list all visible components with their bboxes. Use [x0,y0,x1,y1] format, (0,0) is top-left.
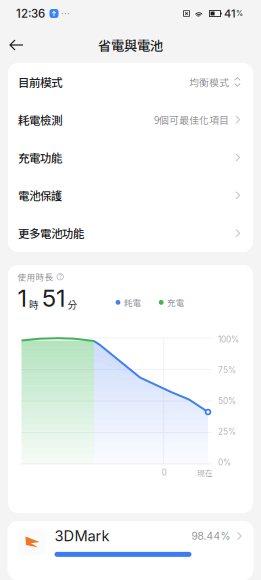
staticText: ? [59,273,62,280]
button[interactable]: 3DMark [7,521,253,563]
staticText: 75% [218,365,236,375]
staticText: 1 [17,283,27,312]
staticText: 9個可最佳化項目 [154,113,229,127]
staticText: % [236,9,243,18]
staticText: 0% [218,457,231,467]
staticText: 更多電池功能 [18,225,84,241]
staticText: 12:36 [16,7,45,20]
staticText: 耗電檢測 [18,111,62,128]
staticText: 均衡模式 [189,75,229,89]
staticText: 充電 [167,296,185,309]
staticText: 省電與電池 [98,35,163,55]
staticText: 充電功能 [18,149,62,166]
staticText: 耗電 [124,296,142,309]
button[interactable]: 充電功能 [8,139,253,176]
staticText: 分 [67,297,77,311]
staticText: 時 [29,297,39,311]
staticText: 3DMark [54,527,109,545]
button[interactable]: 更多電池功能 [8,214,253,252]
button[interactable]: 目前模式 [8,63,253,101]
staticText: 51 [42,283,66,312]
button[interactable]: 耗電檢測 [8,101,253,139]
staticText: ··· [61,8,70,19]
staticText: 25% [218,427,236,437]
staticText: 電池保護 [18,187,62,204]
staticText: 41 [224,7,236,20]
button[interactable]: 電池保護 [8,176,253,214]
staticText: 98.44% [191,530,230,542]
staticText: 0 [161,468,166,478]
staticText: 50% [218,396,236,406]
button[interactable]: Back [0,28,33,62]
staticText: 現在 [197,467,213,478]
staticText: 100% [218,334,239,344]
staticText: 使用時長 [18,271,54,283]
staticText: 目前模式 [18,74,62,90]
